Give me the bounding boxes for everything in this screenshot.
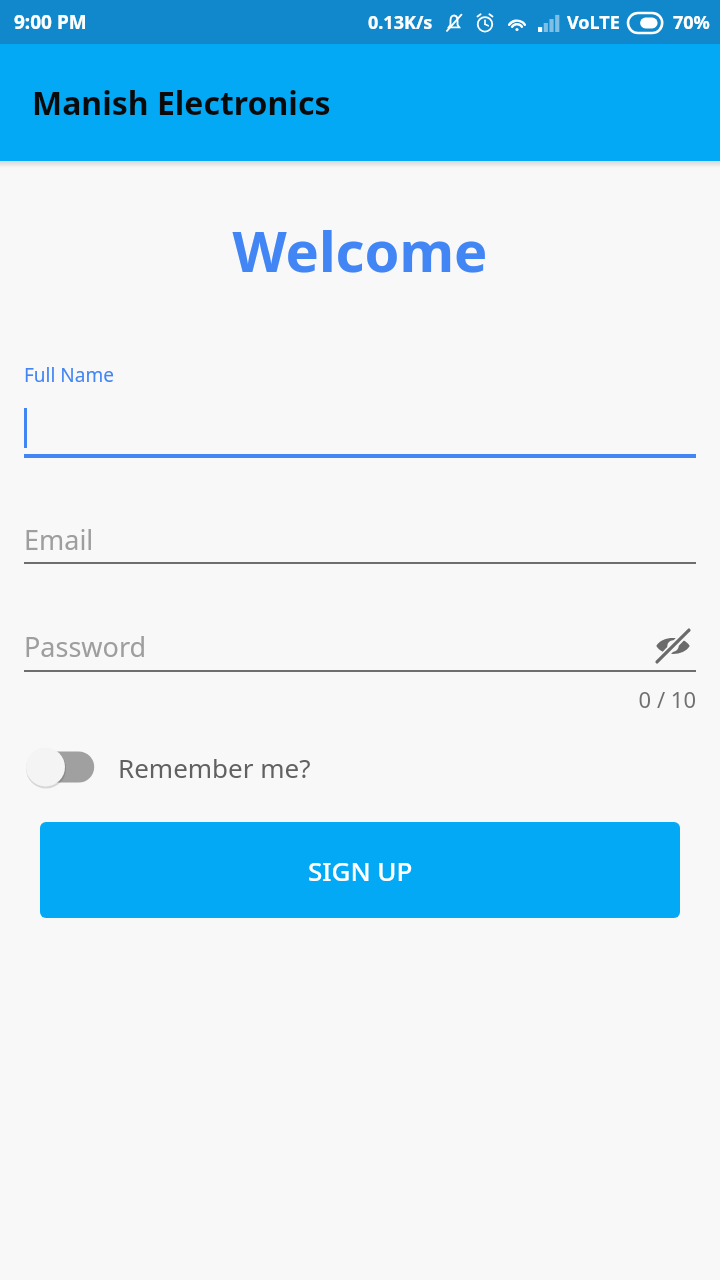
button[interactable]: Remember me? [24,742,311,792]
staticText: 70% [673,10,710,35]
button[interactable]: Show password [650,623,696,669]
staticText: Welcome [0,212,720,288]
button[interactable]: Full Name [24,362,696,458]
button[interactable]: SIGN UP [40,822,680,918]
staticText: Manish Electronics [32,81,331,125]
staticText: 0.13K/s [368,10,433,35]
staticText: Email [24,521,94,558]
staticText: Full Name [24,362,114,388]
button[interactable]: Password [24,622,696,670]
staticText: Remember me? [118,750,311,785]
button[interactable]: Email [24,516,696,564]
staticText: SIGN UP [308,853,413,888]
staticText: VoLTE [567,10,620,35]
staticText: 9:00 PM [14,9,87,35]
staticText: 0 / 10 [24,684,696,714]
staticText: Password [24,628,147,665]
